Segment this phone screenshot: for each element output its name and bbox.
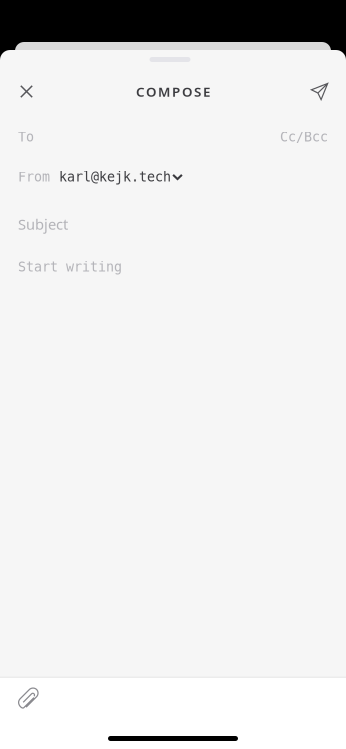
button[interactable]: Start writing bbox=[0, 246, 346, 288]
staticText: karl@kejk.tech bbox=[59, 169, 171, 184]
button[interactable]: Cc/Bcc bbox=[280, 129, 328, 144]
staticText: Start writing bbox=[18, 259, 122, 274]
button[interactable]: Subject bbox=[0, 202, 346, 246]
staticText: From bbox=[18, 169, 50, 184]
button[interactable]: Attach file bbox=[6, 678, 50, 722]
staticText: Subject bbox=[18, 214, 68, 234]
staticText: COMPOSE bbox=[136, 83, 210, 100]
button[interactable]: Send bbox=[293, 71, 346, 112]
staticText: Cc/Bcc bbox=[280, 129, 328, 144]
button[interactable]: Change sender address bbox=[50, 169, 183, 184]
staticText: To bbox=[18, 129, 34, 144]
button[interactable]: Close bbox=[0, 71, 53, 112]
